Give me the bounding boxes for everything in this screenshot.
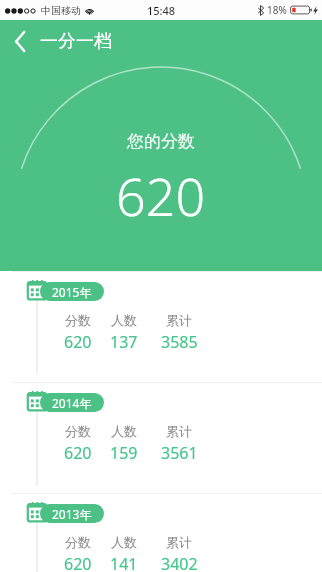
staticText: 人数 bbox=[111, 312, 137, 328]
button[interactable]: 2014年 bbox=[0, 383, 322, 493]
staticText: 2015年 bbox=[52, 284, 92, 300]
staticText: 累计 bbox=[166, 312, 192, 328]
staticText: 2013年 bbox=[52, 506, 92, 522]
staticText: 人数 bbox=[111, 534, 137, 550]
staticText: 3402 bbox=[161, 553, 198, 572]
staticText: 人数 bbox=[111, 423, 137, 439]
staticText: 2014年 bbox=[52, 395, 92, 411]
button[interactable]: 2015年 bbox=[0, 272, 322, 382]
staticText: 620 bbox=[64, 553, 92, 572]
staticText: 3585 bbox=[161, 331, 198, 353]
staticText: 您的分数 bbox=[127, 131, 195, 152]
button[interactable]: 2013年 bbox=[0, 494, 322, 572]
staticText: 620 bbox=[64, 442, 92, 464]
staticText: 中国移动 bbox=[41, 4, 81, 17]
staticText: 累计 bbox=[166, 423, 192, 439]
staticText: 分数 bbox=[65, 534, 91, 550]
staticText: 分数 bbox=[65, 312, 91, 328]
staticText: 15:48 bbox=[147, 3, 176, 18]
staticText: 620 bbox=[64, 331, 92, 353]
staticText: 累计 bbox=[166, 534, 192, 550]
staticText: 137 bbox=[110, 331, 138, 353]
staticText: 3561 bbox=[161, 442, 198, 464]
staticText: 分数 bbox=[65, 423, 91, 439]
staticText: 620 bbox=[116, 160, 206, 231]
staticText: 141 bbox=[110, 553, 138, 572]
staticText: 159 bbox=[110, 442, 138, 464]
staticText: 18% bbox=[267, 3, 287, 17]
button[interactable]: Back bbox=[0, 20, 40, 62]
staticText: 一分一档 bbox=[40, 30, 112, 53]
